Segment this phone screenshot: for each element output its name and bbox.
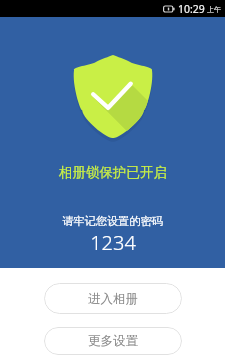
staticText: 10:29 (178, 2, 205, 16)
staticText: 1234 (90, 229, 136, 256)
staticText: 进入相册 (88, 291, 138, 307)
staticText: 请牢记您设置的密码 (62, 214, 163, 228)
button[interactable]: 进入相册 (44, 283, 182, 314)
staticText: 相册锁保护已开启 (59, 164, 167, 181)
button[interactable]: 更多设置 (44, 327, 182, 355)
staticText: 更多设置 (88, 333, 138, 349)
staticText: 上午 (207, 5, 221, 14)
other: Battery (163, 5, 175, 13)
